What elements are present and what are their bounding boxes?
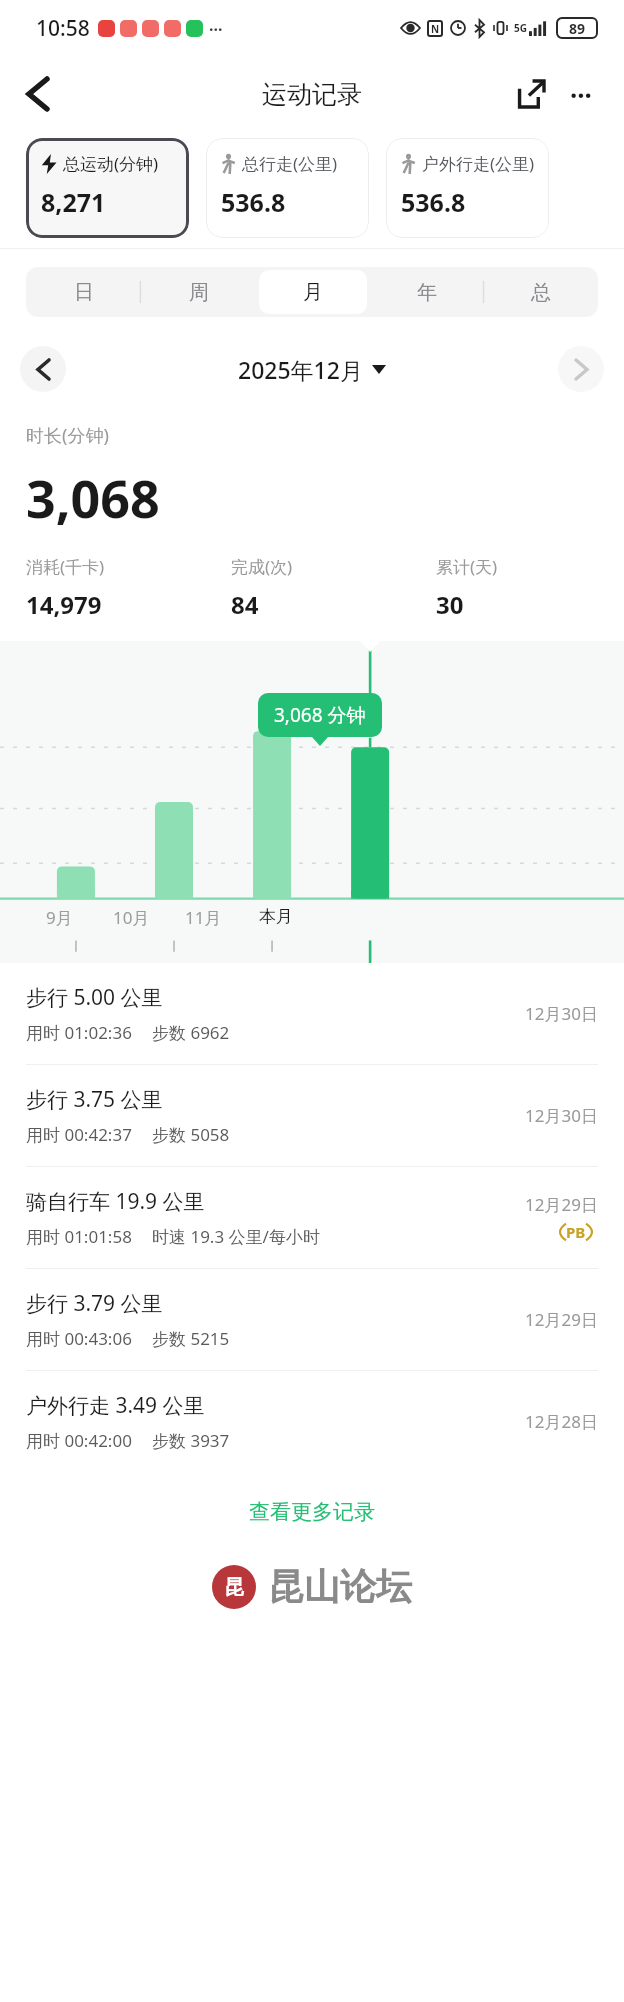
staticText: 查看更多记录 (249, 1499, 375, 1525)
button[interactable]: 步行 5.00 公里 (0, 963, 624, 1064)
button[interactable]: 2025年12月 (238, 354, 386, 385)
button[interactable]: 年 (373, 270, 481, 314)
button[interactable]: Share (508, 71, 554, 117)
staticText: 用时 01:02:36 (26, 1021, 132, 1044)
staticText: 步行 3.75 公里 (26, 1085, 163, 1114)
staticText: 日 (74, 280, 94, 305)
button[interactable]: 月 (259, 270, 367, 314)
staticText: 时速 19.3 公里/每小时 (152, 1225, 320, 1248)
button[interactable]: 周 (144, 270, 253, 314)
button[interactable]: 日 (29, 270, 138, 314)
staticText: 5G (514, 21, 527, 35)
staticText: 总行走(公里) (242, 152, 338, 175)
button[interactable]: 步行 3.75 公里 (0, 1065, 624, 1166)
staticText: 用时 00:42:37 (26, 1123, 132, 1146)
staticText: 12月30日 (525, 1104, 598, 1127)
staticText: 完成(次) (231, 555, 293, 578)
staticText: 14,979 (26, 588, 102, 621)
button[interactable]: 总 (487, 270, 595, 314)
staticText: 用时 01:01:58 (26, 1225, 132, 1248)
staticText: 昆 (224, 1575, 244, 1600)
staticText: 户外行走 3.49 公里 (26, 1391, 205, 1420)
staticText: 本月 (259, 906, 293, 927)
staticText: 户外行走(公里) (422, 152, 535, 175)
staticText: N (431, 22, 440, 36)
staticText: 步数 3937 (152, 1429, 230, 1452)
staticText: 步行 5.00 公里 (26, 983, 163, 1012)
staticText: 2025年12月 (238, 354, 363, 385)
staticText: 步行 3.79 公里 (26, 1289, 163, 1318)
staticText: PB (566, 1222, 586, 1242)
staticText: 步数 5058 (152, 1123, 230, 1146)
staticText: ··· (570, 77, 592, 112)
staticText: 12月30日 (525, 1002, 598, 1025)
button[interactable]: 骑自行车 19.9 公里 (0, 1167, 624, 1268)
button[interactable]: More options (558, 71, 604, 117)
staticText: 运动记录 (262, 79, 362, 110)
button[interactable]: 总运动(分钟) (26, 138, 189, 238)
staticText: 12月29日 (525, 1193, 598, 1216)
staticText: 步数 6962 (152, 1021, 230, 1044)
staticText: 年 (417, 280, 437, 305)
staticText: 总运动(分钟) (63, 152, 159, 175)
staticText: 总 (531, 280, 551, 305)
staticText: 12月29日 (525, 1308, 598, 1331)
button[interactable]: 总行走(公里) (206, 138, 369, 238)
staticText: 3,068 分钟 (274, 702, 366, 728)
button[interactable]: 户外行走(公里) (386, 138, 549, 238)
staticText: 3,068 (26, 462, 160, 533)
staticText: 用时 00:42:00 (26, 1429, 132, 1452)
button[interactable]: Back (14, 70, 62, 118)
staticText: 周 (189, 280, 209, 305)
staticText: 月 (303, 280, 323, 305)
staticText: 11月 (185, 906, 222, 929)
staticText: 89 (569, 19, 586, 38)
staticText: 30 (436, 588, 464, 621)
staticText: 536.8 (401, 185, 466, 219)
staticText: ··· (209, 18, 223, 40)
button[interactable]: Next month (558, 346, 604, 392)
staticText: 累计(天) (436, 555, 498, 578)
staticText: 骑自行车 19.9 公里 (26, 1187, 205, 1216)
staticText: 10:58 (36, 14, 90, 43)
staticText: 9月 (46, 906, 73, 929)
staticText: 消耗(千卡) (26, 555, 105, 578)
staticText: 12月28日 (525, 1410, 598, 1433)
button[interactable]: 户外行走 3.49 公里 (0, 1371, 624, 1472)
staticText: 步数 5215 (152, 1327, 230, 1350)
staticText: 用时 00:43:06 (26, 1327, 132, 1350)
staticText: 时长(分钟) (26, 423, 109, 448)
button[interactable]: Previous month (20, 346, 66, 392)
staticText: 10月 (113, 906, 150, 929)
button[interactable]: 步行 3.79 公里 (0, 1269, 624, 1370)
staticText: 84 (231, 588, 259, 621)
staticText: 8,271 (41, 185, 106, 219)
staticText: 536.8 (221, 185, 286, 219)
button[interactable]: 查看更多记录 (0, 1482, 624, 1542)
staticText: 昆山论坛 (268, 1564, 412, 1609)
